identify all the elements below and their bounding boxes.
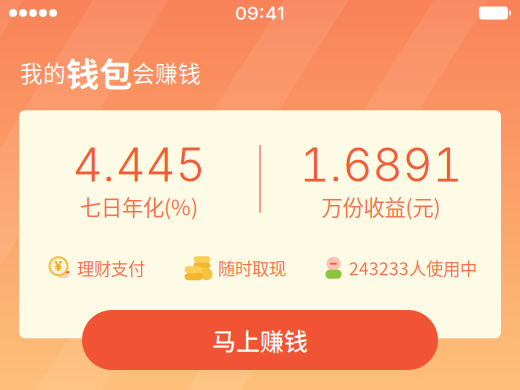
staticText: 钱包 bbox=[66, 48, 132, 96]
staticText: 随时取现 bbox=[218, 255, 286, 280]
button[interactable]: 马上赚钱 bbox=[82, 310, 438, 370]
staticText: 理财支付 bbox=[77, 255, 145, 280]
staticText: 09:41 bbox=[235, 2, 285, 24]
staticText: 马上赚钱 bbox=[212, 323, 308, 357]
staticText: ¥ bbox=[54, 258, 62, 274]
staticText: 会赚钱 bbox=[132, 56, 201, 88]
staticText: 七日年化(%) bbox=[80, 191, 198, 222]
staticText: 万份收益(元) bbox=[321, 191, 440, 222]
staticText: 243233人使用中 bbox=[349, 255, 477, 280]
staticText: 4.445 bbox=[72, 136, 205, 193]
staticText: 1.6891 bbox=[299, 136, 462, 193]
staticText: 我的 bbox=[20, 56, 66, 88]
